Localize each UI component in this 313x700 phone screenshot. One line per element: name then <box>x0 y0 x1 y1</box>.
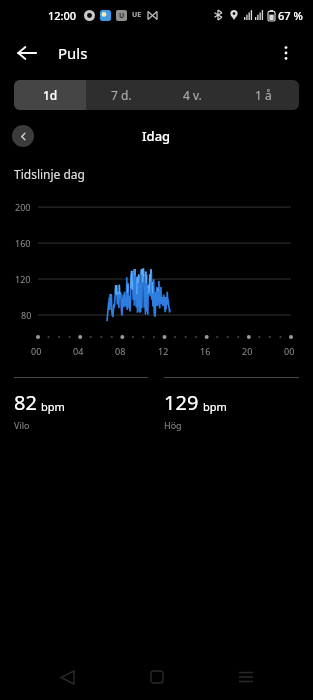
button[interactable]: 1d <box>14 80 86 110</box>
staticText: 7 d. <box>111 87 132 103</box>
staticText: Idag <box>142 127 171 145</box>
staticText: Hög <box>164 419 182 431</box>
staticText: U <box>119 11 125 21</box>
staticText: 120 <box>15 273 31 285</box>
staticText: 12:00 <box>48 8 77 23</box>
staticText: UE <box>132 10 142 20</box>
staticText: 16 <box>200 345 211 357</box>
button[interactable]: More options <box>265 32 307 74</box>
staticText: Vilo <box>14 419 30 431</box>
staticText: 80 <box>21 309 32 321</box>
staticText: Puls <box>58 43 88 63</box>
button[interactable]: 1 å <box>228 80 299 110</box>
button[interactable]: Home <box>134 654 180 700</box>
staticText: 200 <box>15 201 31 213</box>
button[interactable]: Back <box>6 32 48 74</box>
staticText: 20 <box>242 345 253 357</box>
staticText: bpm <box>203 399 227 414</box>
staticText: bpm <box>41 399 65 414</box>
staticText: 00 <box>31 345 42 357</box>
staticText: 82 <box>14 389 37 416</box>
staticText: 04 <box>73 345 84 357</box>
button[interactable]: Previous day <box>12 125 34 147</box>
staticText: 4 v. <box>183 87 202 103</box>
button[interactable]: Recent apps <box>223 654 269 700</box>
staticText: 12 <box>158 345 169 357</box>
staticText: 160 <box>15 237 31 249</box>
staticText: 1 å <box>255 87 272 103</box>
button[interactable]: 4 v. <box>157 80 228 110</box>
staticText: 129 <box>164 389 199 416</box>
button[interactable]: Back <box>44 654 90 700</box>
staticText: 1d <box>43 87 58 103</box>
staticText: Tidslinje dag <box>14 166 85 182</box>
staticText: 67 % <box>278 8 303 23</box>
button[interactable]: 82 <box>14 377 148 431</box>
staticText: 08 <box>115 345 126 357</box>
staticText: 00 <box>284 345 295 357</box>
button[interactable]: 129 <box>164 377 299 431</box>
button[interactable]: 7 d. <box>86 80 157 110</box>
